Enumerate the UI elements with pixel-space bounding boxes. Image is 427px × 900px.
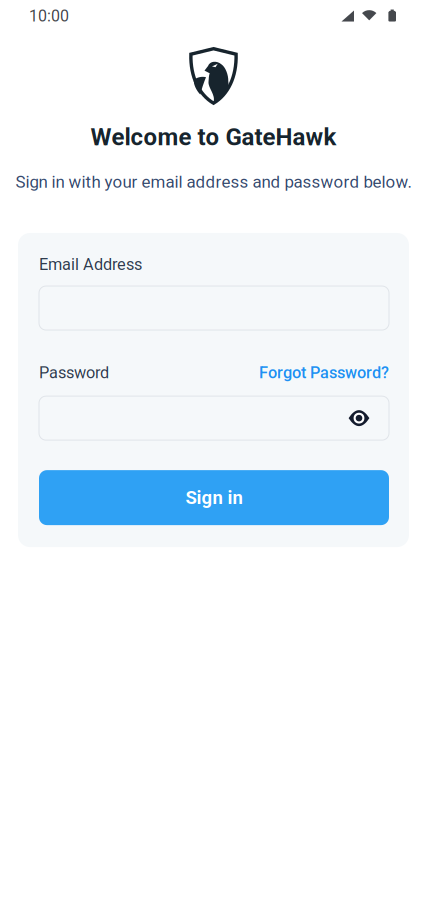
button[interactable]: Forgot Password? xyxy=(259,363,389,382)
staticText: Sign in with your email address and pass… xyxy=(15,172,411,192)
staticText: Sign in xyxy=(185,487,242,508)
staticText: Password xyxy=(39,363,109,382)
staticText: Forgot Password? xyxy=(259,363,389,382)
button[interactable]: Sign in xyxy=(39,470,389,525)
button[interactable] xyxy=(348,410,370,427)
staticText: Welcome to GateHawk xyxy=(90,123,336,151)
staticText: 10:00 xyxy=(29,7,69,25)
button[interactable] xyxy=(39,396,389,440)
staticText: Email Address xyxy=(39,255,142,274)
